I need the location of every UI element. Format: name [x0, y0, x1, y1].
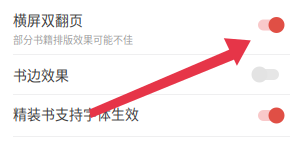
button[interactable]: 精装书支持字体生效	[0, 95, 300, 136]
button[interactable]: 横屏双翻页	[0, 0, 300, 54]
staticText: 部分书籍排版效果可能不佳	[13, 32, 133, 47]
staticText: 书边效果	[13, 64, 69, 85]
staticText: 精装书支持字体生效	[13, 103, 139, 124]
staticText: 横屏双翻页	[13, 9, 83, 30]
button[interactable]: 书边效果	[0, 55, 300, 94]
